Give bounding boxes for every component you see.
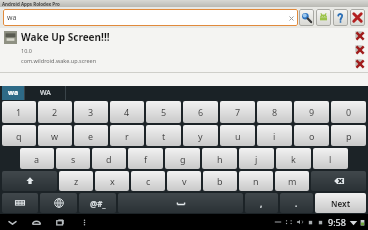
staticText: a xyxy=(34,153,40,165)
staticText: . xyxy=(295,198,298,209)
staticText: p xyxy=(346,130,352,142)
button[interactable]: o xyxy=(294,125,329,146)
button[interactable]: s xyxy=(56,148,90,169)
staticText: 4 xyxy=(124,106,130,118)
button[interactable]: Recents xyxy=(48,214,72,230)
button[interactable]: x xyxy=(95,171,129,191)
button[interactable]: v xyxy=(167,171,201,191)
staticText: d xyxy=(106,153,112,165)
button[interactable]: m xyxy=(275,171,309,191)
button[interactable]: 4 xyxy=(110,101,144,123)
button[interactable]: y xyxy=(183,125,218,146)
button[interactable]: j xyxy=(239,148,274,169)
button[interactable]: Home xyxy=(24,214,48,230)
staticText: z xyxy=(74,175,79,187)
button[interactable]: 5 xyxy=(146,101,181,123)
staticText: v xyxy=(182,175,187,187)
button[interactable]: 3 xyxy=(74,101,108,123)
button[interactable]: g xyxy=(165,148,200,169)
staticText: 8 xyxy=(272,106,278,118)
staticText: m xyxy=(288,175,297,187)
staticText: Wake Up Screen!!! xyxy=(21,30,110,44)
staticText: WA xyxy=(40,88,51,98)
staticText: , xyxy=(260,198,263,209)
button[interactable]: , xyxy=(245,193,278,213)
button[interactable]: WA xyxy=(25,86,65,100)
staticText: x xyxy=(110,175,115,187)
staticText: com.wildroid.wake.up.screen xyxy=(21,57,97,64)
staticText: s xyxy=(71,153,76,165)
button[interactable]: n xyxy=(239,171,273,191)
button[interactable]: Delete xyxy=(354,58,365,69)
button[interactable]: t xyxy=(146,125,181,146)
staticText: y xyxy=(198,130,203,142)
button[interactable]: 6 xyxy=(183,101,218,123)
button[interactable]: Space xyxy=(118,193,243,213)
button[interactable]: h xyxy=(202,148,237,169)
staticText: wa xyxy=(7,13,17,23)
button[interactable]: f xyxy=(128,148,163,169)
staticText: @#_ xyxy=(90,198,106,209)
staticText: b xyxy=(217,175,223,187)
button[interactable]: Back xyxy=(0,214,24,230)
button[interactable]: c xyxy=(131,171,165,191)
button[interactable]: r xyxy=(110,125,144,146)
staticText: 10.0 xyxy=(21,47,32,54)
staticText: n xyxy=(253,175,259,187)
button[interactable]: e xyxy=(74,125,108,146)
button[interactable]: l xyxy=(313,148,348,169)
staticText: h xyxy=(217,153,223,165)
button[interactable]: Wake Up Screen!!! xyxy=(0,28,368,73)
button[interactable]: wa xyxy=(3,9,298,26)
button[interactable]: i xyxy=(257,125,292,146)
button[interactable]: 9 xyxy=(294,101,329,123)
button[interactable]: Remove xyxy=(354,30,365,41)
staticText: o xyxy=(309,130,315,142)
staticText: 2 xyxy=(52,106,58,118)
staticText: 3 xyxy=(88,106,94,118)
button[interactable]: Next xyxy=(315,193,366,213)
button[interactable]: z xyxy=(59,171,93,191)
button[interactable]: a xyxy=(20,148,54,169)
button[interactable]: Help xyxy=(333,9,348,26)
button[interactable]: Keyboard settings xyxy=(2,193,38,213)
button[interactable]: . xyxy=(280,193,313,213)
staticText: 9:58 xyxy=(328,216,346,228)
button[interactable]: Details xyxy=(354,44,365,55)
button[interactable]: wa xyxy=(2,86,24,100)
button[interactable]: Close xyxy=(350,9,365,26)
button[interactable]: Backspace xyxy=(311,171,366,191)
staticText: q xyxy=(16,130,22,142)
button[interactable]: q xyxy=(2,125,36,146)
button[interactable]: Menu xyxy=(72,214,96,230)
staticText: r xyxy=(125,130,129,142)
staticText: u xyxy=(235,130,241,142)
staticText: Android Apps Rolodex Pro xyxy=(2,1,60,7)
staticText: 7 xyxy=(235,106,241,118)
staticText: j xyxy=(255,153,258,165)
button[interactable]: 7 xyxy=(220,101,255,123)
staticText: i xyxy=(273,130,276,142)
button[interactable]: d xyxy=(92,148,126,169)
button[interactable]: 2 xyxy=(38,101,72,123)
button[interactable]: Shift xyxy=(2,171,57,191)
button[interactable]: p xyxy=(331,125,366,146)
button[interactable]: b xyxy=(203,171,237,191)
staticText: c xyxy=(146,175,151,187)
button[interactable]: 1 xyxy=(2,101,36,123)
staticText: g xyxy=(180,153,186,165)
button[interactable]: @#_ xyxy=(79,193,116,213)
staticText: w xyxy=(51,130,59,142)
button[interactable]: u xyxy=(220,125,255,146)
button[interactable]: 0 xyxy=(331,101,366,123)
staticText: 6 xyxy=(198,106,204,118)
button[interactable]: 8 xyxy=(257,101,292,123)
button[interactable]: k xyxy=(276,148,311,169)
button[interactable]: Search xyxy=(299,9,314,26)
button[interactable]: w xyxy=(38,125,72,146)
staticText: 0 xyxy=(346,106,352,118)
staticText: wa xyxy=(8,88,19,98)
staticText: 1 xyxy=(16,106,22,118)
button[interactable]: Apps xyxy=(316,9,331,26)
button[interactable]: Language xyxy=(40,193,77,213)
